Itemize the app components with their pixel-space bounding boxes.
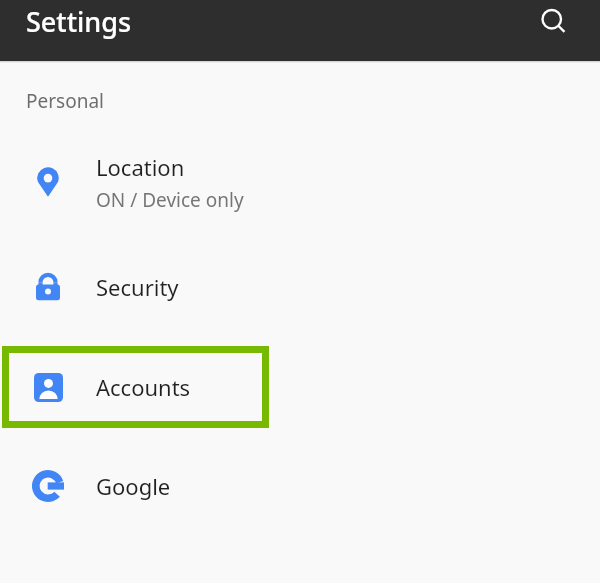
staticText: Accounts: [96, 372, 191, 402]
button[interactable]: Location: [0, 127, 600, 237]
button[interactable]: Accounts: [0, 337, 600, 437]
staticText: Settings: [26, 3, 132, 40]
staticText: Personal: [26, 88, 104, 114]
button[interactable]: Search: [526, 0, 582, 50]
staticText: Google: [96, 471, 171, 501]
staticText: Location: [96, 152, 185, 182]
button[interactable]: Security: [0, 237, 600, 337]
staticText: Security: [96, 272, 179, 302]
staticText: ON / Device only: [96, 187, 244, 213]
button[interactable]: Google: [0, 437, 600, 535]
